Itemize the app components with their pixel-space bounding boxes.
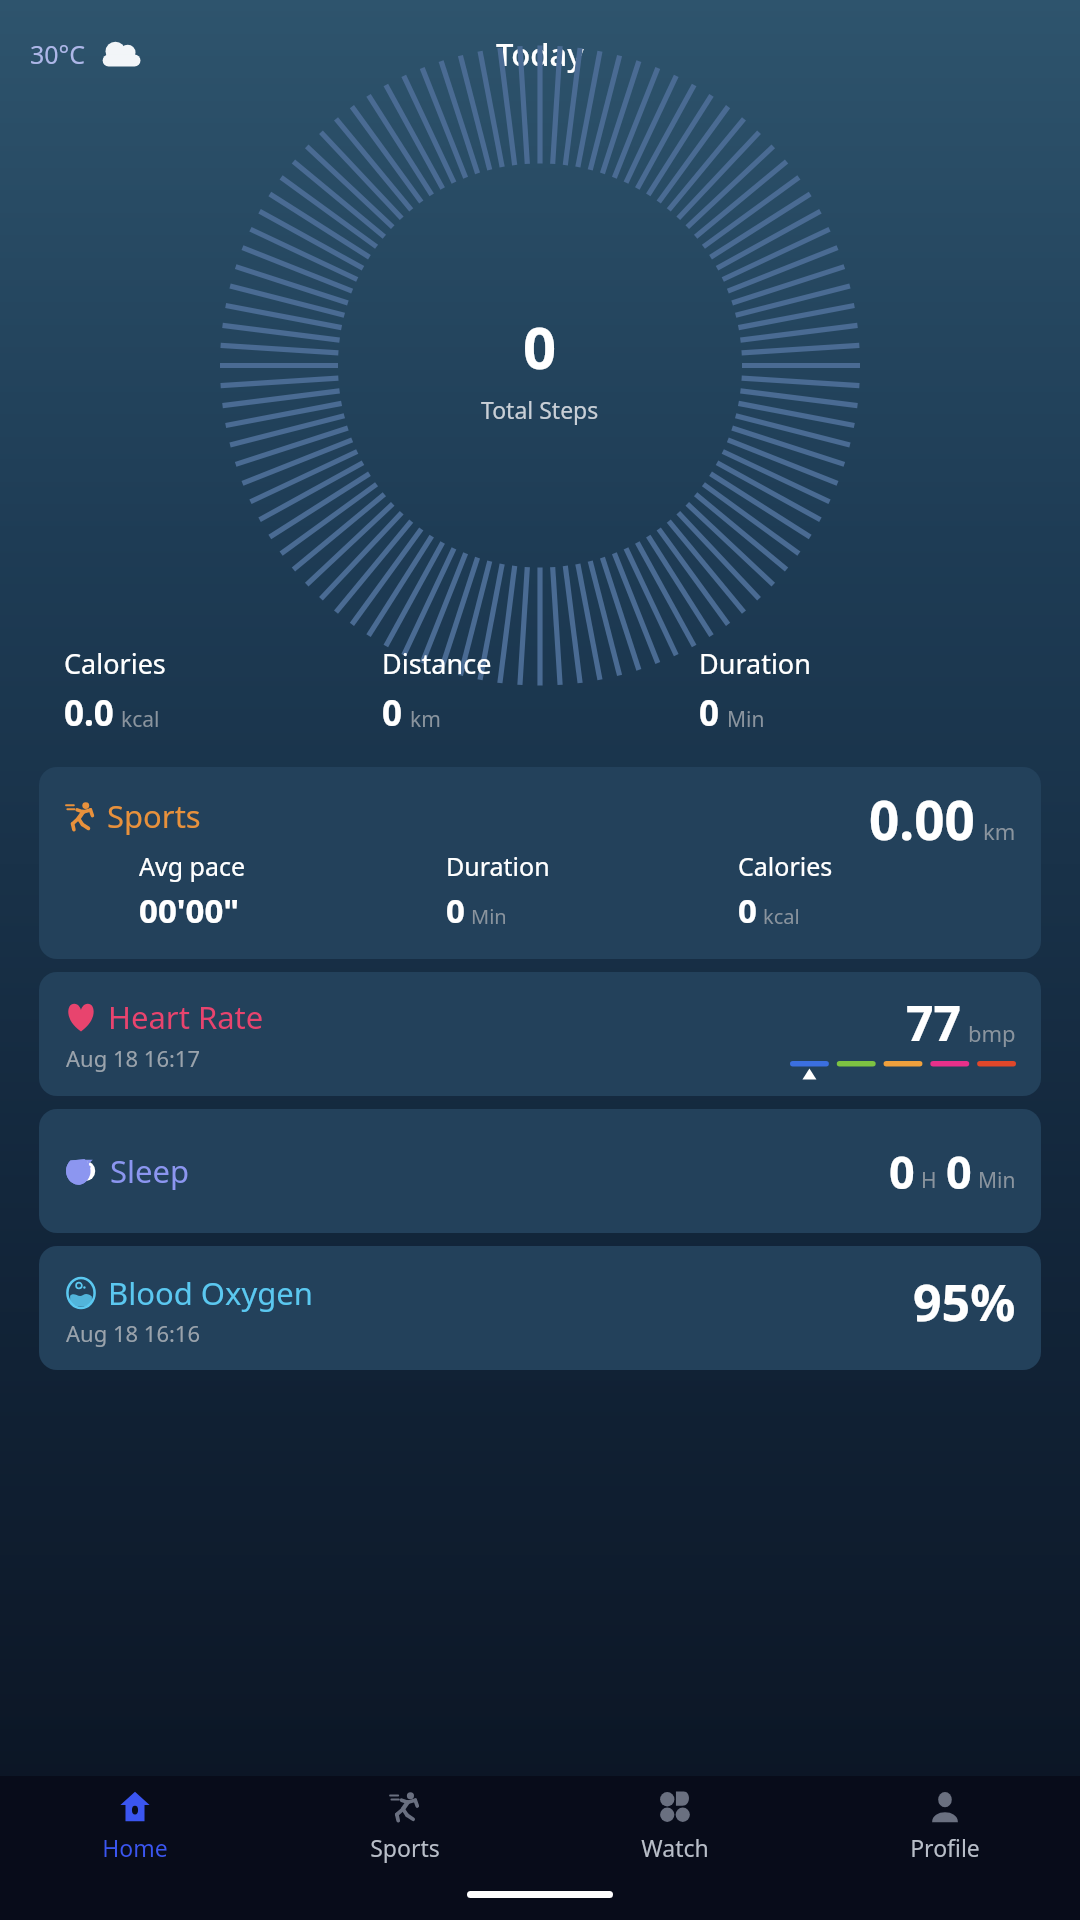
staticText: Distance: [382, 645, 492, 682]
button[interactable]: 30°C: [22, 31, 152, 77]
staticText: Aug 18 16:17: [66, 1043, 201, 1073]
staticText: km: [410, 705, 441, 734]
staticText: H: [921, 1166, 937, 1195]
staticText: 0: [946, 1141, 972, 1202]
staticText: Sports: [107, 795, 201, 837]
staticText: Watch: [641, 1832, 709, 1863]
staticText: 0: [523, 307, 557, 386]
button[interactable]: Sports: [39, 767, 1041, 959]
staticText: bmp: [968, 1018, 1016, 1048]
staticText: 30°C: [30, 37, 86, 71]
staticText: km: [983, 816, 1016, 846]
staticText: 77: [906, 990, 961, 1055]
button[interactable]: Blood Oxygen: [39, 1246, 1041, 1370]
button[interactable]: Sports: [270, 1776, 540, 1876]
staticText: Min: [471, 903, 507, 930]
staticText: Duration: [699, 645, 811, 682]
button[interactable]: Sleep: [39, 1109, 1041, 1233]
staticText: 00'00": [139, 888, 240, 933]
staticText: Avg pace: [139, 849, 246, 883]
staticText: Sleep: [110, 1150, 190, 1192]
staticText: 0: [738, 888, 757, 933]
staticText: Aug 18 16:16: [66, 1318, 201, 1348]
staticText: Home: [102, 1832, 168, 1863]
staticText: 0.00: [869, 783, 975, 855]
staticText: Heart Rate: [108, 996, 264, 1038]
button[interactable]: Heart Rate: [39, 972, 1041, 1096]
staticText: 95%: [913, 1268, 1016, 1336]
staticText: 0.0: [64, 689, 114, 737]
staticText: 0: [446, 888, 465, 933]
staticText: Profile: [910, 1832, 980, 1863]
staticText: Calories: [64, 645, 166, 682]
button[interactable]: Profile: [810, 1776, 1080, 1876]
staticText: 0: [382, 689, 403, 737]
staticText: Calories: [738, 849, 833, 883]
staticText: 0: [889, 1141, 915, 1202]
staticText: Duration: [446, 849, 550, 883]
staticText: 0: [699, 689, 720, 737]
staticText: Sports: [370, 1832, 440, 1863]
button[interactable]: Watch: [540, 1776, 810, 1876]
staticText: Min: [727, 705, 765, 734]
staticText: kcal: [121, 705, 160, 734]
staticText: Blood Oxygen: [108, 1272, 313, 1314]
staticText: Total Steps: [481, 394, 599, 425]
staticText: kcal: [763, 903, 800, 930]
staticText: Today: [496, 33, 584, 75]
button[interactable]: Home: [0, 1776, 270, 1876]
staticText: Min: [978, 1166, 1016, 1195]
